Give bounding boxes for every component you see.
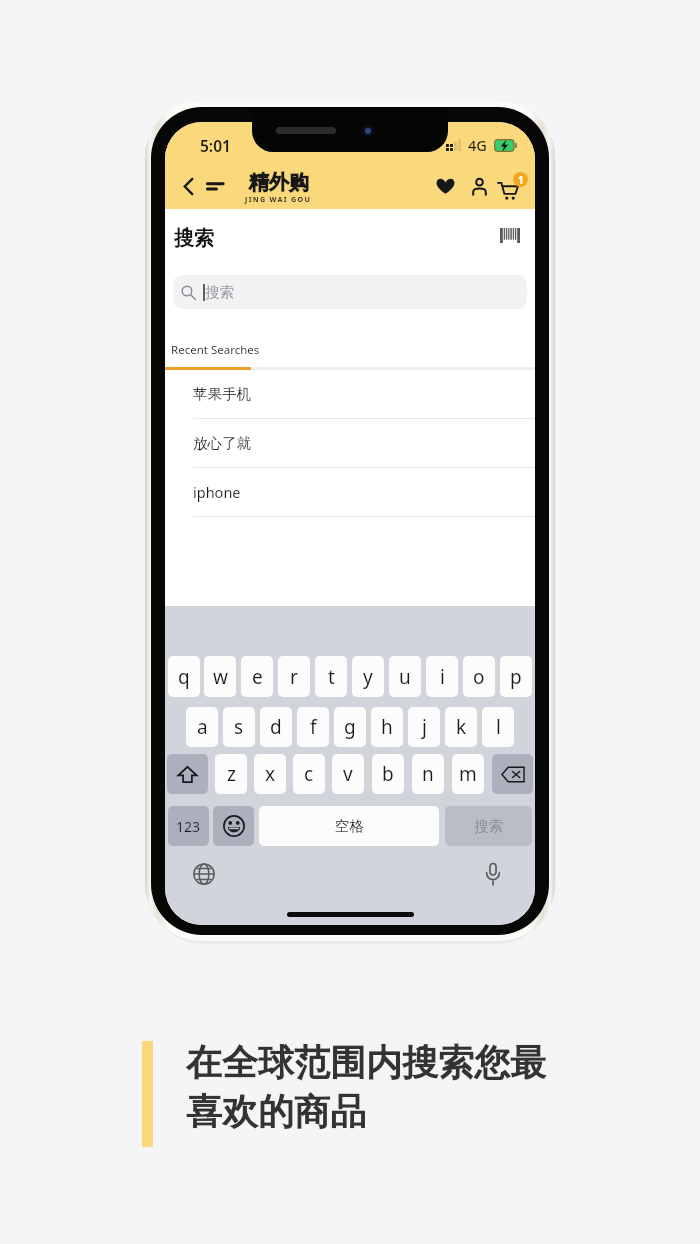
button[interactable]: w <box>204 656 236 697</box>
staticText: 精外购 <box>249 170 309 195</box>
staticText: n <box>422 761 434 787</box>
staticText: d <box>270 714 282 740</box>
staticText: l <box>496 714 501 740</box>
staticText: o <box>473 664 485 690</box>
staticText: v <box>343 761 353 787</box>
staticText: g <box>344 714 356 740</box>
button[interactable]: 123 <box>168 806 209 846</box>
staticText: f <box>310 714 317 740</box>
staticText: a <box>197 714 208 740</box>
staticText: j <box>422 714 427 740</box>
staticText: r <box>290 664 298 690</box>
button[interactable]: Backspace <box>492 754 533 794</box>
button[interactable]: e <box>241 656 273 697</box>
button[interactable]: k <box>445 707 477 747</box>
button[interactable]: i <box>426 656 458 697</box>
staticText: 放心了就 <box>193 434 251 452</box>
button[interactable]: c <box>293 754 325 794</box>
staticText: x <box>265 761 276 787</box>
staticText: w <box>213 664 228 690</box>
button[interactable]: h <box>371 707 403 747</box>
staticText: e <box>252 664 263 690</box>
staticText: b <box>382 761 394 787</box>
staticText: p <box>510 664 522 690</box>
staticText: JING WAI GOU <box>245 194 312 204</box>
button[interactable]: d <box>260 707 292 747</box>
button[interactable]: 搜索 <box>445 806 532 846</box>
button[interactable]: Favorites <box>430 171 460 201</box>
button[interactable]: Back <box>175 173 201 199</box>
button[interactable]: Scan barcode <box>498 223 522 247</box>
staticText: h <box>381 714 393 740</box>
button[interactable]: Change language <box>191 861 217 887</box>
staticText: 空格 <box>335 817 364 835</box>
staticText: 1 <box>518 173 524 187</box>
staticText: 123 <box>176 817 201 836</box>
staticText: z <box>227 761 236 787</box>
button[interactable]: 苹果手机 <box>165 370 535 419</box>
button[interactable]: 搜索 <box>173 275 527 309</box>
staticText: t <box>328 664 335 690</box>
button[interactable]: b <box>372 754 404 794</box>
button[interactable]: g <box>334 707 366 747</box>
button[interactable]: z <box>215 754 247 794</box>
button[interactable]: l <box>482 707 514 747</box>
button[interactable]: Emoji <box>213 806 254 846</box>
staticText: i <box>440 664 445 690</box>
staticText: m <box>459 761 477 787</box>
button[interactable]: u <box>389 656 421 697</box>
button[interactable]: v <box>332 754 364 794</box>
button[interactable]: Menu <box>202 173 228 199</box>
staticText: 搜索 <box>174 226 214 251</box>
staticText: 5:01 <box>200 135 231 156</box>
staticText: s <box>234 714 244 740</box>
staticText: q <box>178 664 190 690</box>
button[interactable]: s <box>223 707 255 747</box>
button[interactable]: j <box>408 707 440 747</box>
button[interactable]: m <box>452 754 484 794</box>
button[interactable]: p <box>500 656 532 697</box>
staticText: 在全球范围内搜索您最 喜欢的商品 <box>186 1040 546 1135</box>
button[interactable]: f <box>297 707 329 747</box>
staticText: 4G <box>468 135 487 155</box>
staticText: 搜索 <box>205 283 234 301</box>
button[interactable]: q <box>168 656 200 697</box>
staticText: 搜索 <box>474 817 503 835</box>
staticText: k <box>456 714 467 740</box>
button[interactable]: Cart <box>498 172 528 202</box>
button[interactable]: r <box>278 656 310 697</box>
button[interactable]: Account <box>464 171 494 201</box>
button[interactable]: o <box>463 656 495 697</box>
button[interactable]: 空格 <box>259 806 439 846</box>
button[interactable]: iphone <box>165 468 535 517</box>
staticText: c <box>304 761 314 787</box>
button[interactable]: t <box>315 656 347 697</box>
staticText: Recent Searches <box>171 342 260 358</box>
button[interactable]: y <box>352 656 384 697</box>
staticText: iphone <box>193 482 241 502</box>
button[interactable]: Shift <box>167 754 208 794</box>
button[interactable]: Dictation <box>480 861 506 887</box>
staticText: u <box>399 664 411 690</box>
button[interactable]: a <box>186 707 218 747</box>
staticText: y <box>363 664 373 690</box>
button[interactable]: x <box>254 754 286 794</box>
staticText: 苹果手机 <box>193 385 251 403</box>
button[interactable]: 放心了就 <box>165 419 535 468</box>
button[interactable]: n <box>412 754 444 794</box>
